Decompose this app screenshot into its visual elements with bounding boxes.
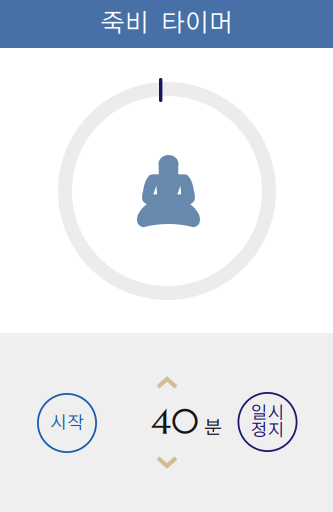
button[interactable]: Increase minutes [152,373,182,393]
button[interactable]: 시작 [37,393,97,453]
staticText: 일시 [250,405,284,422]
staticText: 정지 [250,422,284,439]
staticText: 분 [204,419,222,438]
staticText: 40 [151,400,199,443]
button[interactable]: Decrease minutes [152,452,182,472]
staticText: 죽비 타이머 [100,11,232,37]
button[interactable]: 일시 [237,392,298,452]
staticText: 시작 [50,414,84,432]
